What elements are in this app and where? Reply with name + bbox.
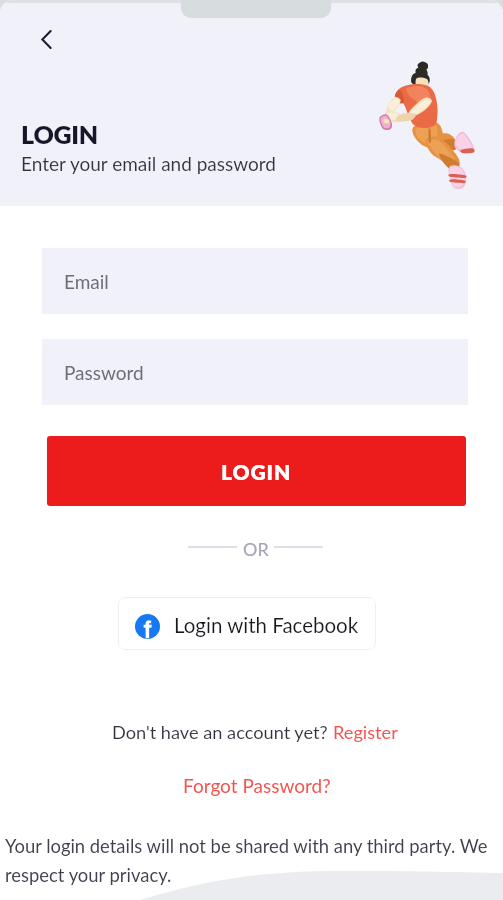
staticText: Login with Facebook	[174, 613, 359, 638]
staticText: OR	[243, 538, 269, 560]
button[interactable]: Register	[333, 721, 398, 743]
button[interactable]: Forgot Password?	[183, 774, 331, 797]
staticText: Don't have an account yet?	[112, 721, 333, 743]
button[interactable]: Back	[26, 19, 66, 59]
staticText: Password	[64, 361, 144, 384]
staticText: Your login details will not be shared wi…	[5, 835, 500, 886]
button[interactable]: Login with Facebook	[118, 597, 376, 650]
button[interactable]: Password	[42, 339, 468, 405]
button[interactable]: LOGIN	[47, 436, 466, 506]
staticText: Forgot Password?	[183, 774, 331, 797]
staticText: LOGIN	[221, 459, 292, 484]
button[interactable]: Email	[42, 248, 468, 314]
staticText: Enter your email and password	[21, 152, 277, 175]
staticText: Email	[64, 270, 109, 293]
staticText: Register	[333, 721, 398, 743]
staticText: LOGIN	[21, 119, 98, 149]
